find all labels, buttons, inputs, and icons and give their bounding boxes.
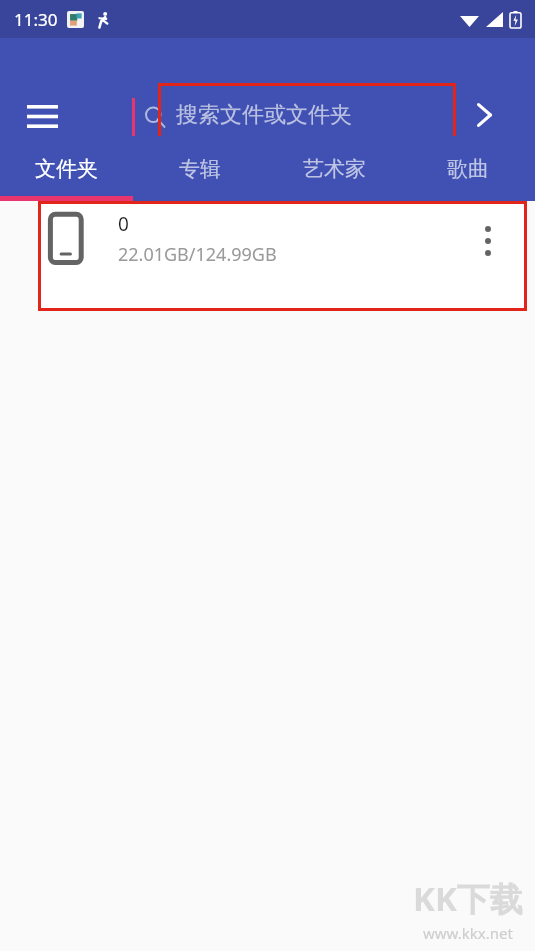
staticText: 艺术家 [303,156,366,182]
button[interactable]: Menu [18,94,66,138]
button[interactable]: 0 [38,201,527,311]
staticText: 专辑 [179,156,221,182]
button[interactable]: More options [471,221,505,261]
button[interactable]: 艺术家 [267,136,401,201]
button[interactable]: Search [461,92,507,138]
button[interactable]: 专辑 [133,136,267,201]
staticText: 0 [118,211,129,237]
button[interactable]: 文件夹 [0,136,133,201]
staticText: 文件夹 [35,156,98,182]
staticText: KK下载 [413,876,523,921]
staticText: 搜索文件或文件夹 [176,101,352,129]
staticText: 歌曲 [447,156,489,182]
staticText: www.kkx.net [423,923,513,943]
staticText: 11:30 [14,8,58,31]
staticText: 22.01GB/124.99GB [118,242,277,267]
button[interactable]: 歌曲 [401,136,535,201]
button[interactable]: 搜索文件或文件夹 [118,83,508,153]
